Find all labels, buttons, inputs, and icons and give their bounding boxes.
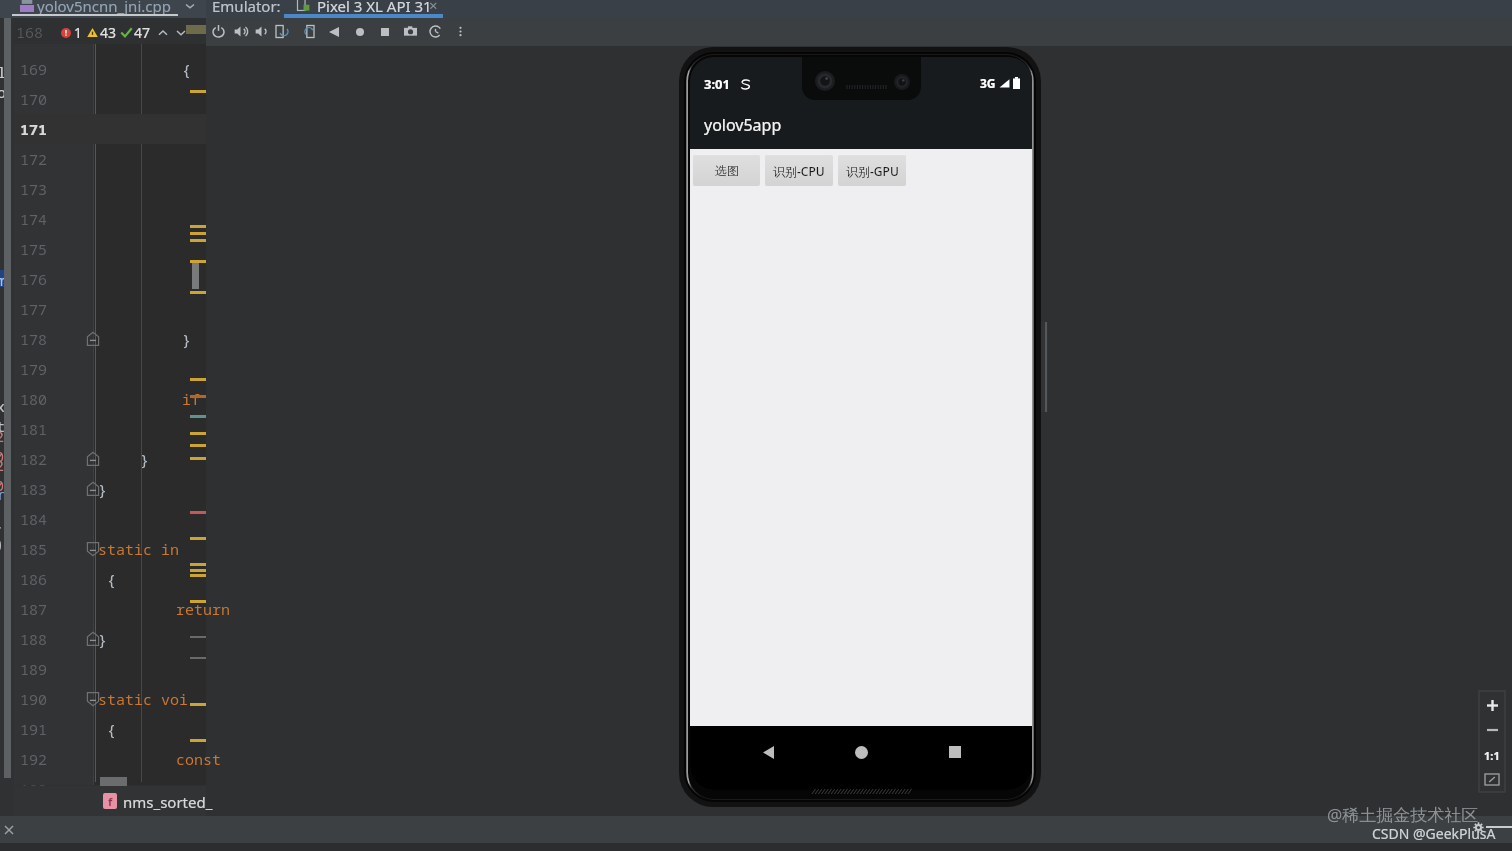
- button[interactable]: Rotate right: [296, 17, 318, 46]
- staticText: 189: [20, 659, 48, 679]
- staticText: 识别-GPU: [846, 163, 899, 179]
- staticText: 选图: [715, 163, 739, 178]
- staticText: 3:01: [704, 75, 730, 93]
- button[interactable]: 识别-CPU: [765, 155, 833, 186]
- button[interactable]: Power: [207, 17, 229, 46]
- staticText: 47: [134, 23, 151, 42]
- staticText: 191: [20, 719, 48, 739]
- staticText: 171: [20, 119, 48, 139]
- staticText: 176: [20, 269, 48, 289]
- button[interactable]: Actual size: [1479, 743, 1505, 767]
- staticText: static in: [98, 539, 180, 559]
- staticText: 174: [20, 209, 48, 229]
- button[interactable]: Settings: [1470, 819, 1486, 835]
- staticText: Pixel 3 XL API 31: [317, 0, 432, 14]
- staticText: 180: [20, 389, 48, 409]
- button[interactable]: 选图: [693, 155, 760, 186]
- staticText: 172: [20, 149, 48, 169]
- button[interactable]: Back: [755, 739, 781, 765]
- staticText: 184: [20, 509, 48, 529]
- button[interactable]: 识别-GPU: [838, 155, 906, 186]
- button[interactable]: Hide: [2, 823, 16, 837]
- staticText: return: [140, 599, 231, 619]
- staticText: ,): [0, 513, 9, 553]
- button[interactable]: Volume up: [229, 17, 251, 46]
- staticText: CSDN @GeekPlusA: [1372, 824, 1496, 843]
- button[interactable]: Volume down: [250, 17, 272, 46]
- staticText: 185: [20, 539, 48, 559]
- button[interactable]: Recent apps: [942, 739, 968, 765]
- staticText: 43: [100, 23, 117, 42]
- button[interactable]: Home: [848, 739, 874, 765]
- staticText: 188: [20, 629, 48, 649]
- staticText: yolov5app: [704, 114, 782, 136]
- button[interactable]: Zoom out: [1479, 718, 1505, 742]
- staticText: 182: [20, 449, 48, 469]
- staticText: 183: [20, 479, 48, 499]
- staticText: 192: [20, 749, 48, 769]
- staticText: if: [182, 389, 201, 409]
- staticText: static voi: [98, 689, 189, 709]
- button[interactable]: Pixel 3 XL API 31: [284, 0, 443, 18]
- staticText: @稀土掘金技术社区: [1327, 803, 1479, 826]
- staticText: 169: [20, 59, 48, 79]
- staticText: 168: [16, 22, 44, 42]
- button[interactable]: Overview: [374, 17, 396, 46]
- staticText: }: [182, 329, 192, 349]
- staticText: xt: [0, 396, 10, 436]
- staticText: 173: [20, 179, 48, 199]
- staticText: f: [108, 794, 113, 809]
- staticText: n: [0, 484, 8, 504]
- staticText: nms_sorted_: [123, 792, 213, 812]
- staticText: 3G: [980, 75, 996, 91]
- button[interactable]: Back: [323, 17, 345, 46]
- button[interactable]: Rotate left: [271, 17, 293, 46]
- staticText: ×: [429, 0, 438, 13]
- staticText: {: [98, 719, 117, 739]
- button[interactable]: Fit to window: [1479, 767, 1505, 791]
- button[interactable]: History: [424, 17, 446, 46]
- staticText: 187: [20, 599, 48, 619]
- staticText: 1:1: [1484, 748, 1500, 763]
- staticText: const: [140, 749, 222, 769]
- staticText: 178: [20, 329, 48, 349]
- staticText: }: [98, 629, 108, 649]
- staticText: 1: [74, 23, 83, 42]
- button[interactable]: Previous problem: [156, 26, 169, 39]
- button[interactable]: Tab list: [182, 0, 198, 14]
- button[interactable]: yolov5ncnn_jni.cpp: [0, 0, 206, 18]
- staticText: {: [98, 569, 117, 589]
- button[interactable]: Home: [349, 17, 371, 46]
- staticText: 20: [0, 426, 9, 466]
- staticText: 175: [20, 239, 48, 259]
- staticText: 177: [20, 299, 48, 319]
- staticText: 190: [20, 689, 48, 709]
- staticText: 186: [20, 569, 48, 589]
- staticText: 170: [20, 89, 48, 109]
- staticText: }: [98, 479, 108, 499]
- staticText: 179: [20, 359, 48, 379]
- staticText: m: [0, 270, 6, 287]
- button[interactable]: More: [449, 17, 471, 46]
- button[interactable]: Next problem: [174, 26, 187, 39]
- staticText: 181: [20, 419, 48, 439]
- staticText: Emulator:: [212, 0, 281, 14]
- staticText: yolov5ncnn_jni.cpp: [37, 0, 171, 14]
- button[interactable]: Screenshot: [399, 17, 421, 46]
- button[interactable]: Zoom in: [1479, 693, 1505, 717]
- staticText: 识别-CPU: [773, 163, 825, 179]
- staticText: }: [140, 449, 150, 469]
- staticText: {: [182, 59, 192, 79]
- staticText: 20: [0, 455, 9, 495]
- staticText: lo: [0, 62, 11, 102]
